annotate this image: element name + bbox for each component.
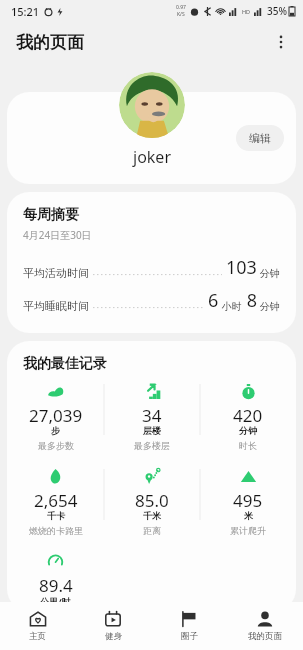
staticText: 米	[244, 510, 253, 521]
staticText: 千卡	[47, 510, 65, 521]
button[interactable]: Profile photo	[119, 72, 185, 138]
button[interactable]: 主页	[0, 602, 75, 650]
staticText: 4月24日至30日	[23, 228, 92, 242]
staticText: 燃烧的卡路里	[29, 525, 83, 536]
staticText: HD	[242, 8, 251, 15]
button[interactable]: 34	[104, 379, 200, 464]
staticText: 平均活动时间	[23, 266, 89, 280]
staticText: 35%	[267, 4, 287, 18]
staticText: 编辑	[249, 131, 271, 145]
staticText: 我的最佳记录	[23, 355, 107, 373]
staticText: 2,654	[34, 489, 78, 512]
button[interactable]: 2,654	[7, 464, 104, 549]
staticText: 27,039	[29, 404, 83, 427]
button[interactable]: 495	[200, 464, 296, 549]
staticText: 层楼	[143, 425, 161, 436]
staticText: 每周摘要	[23, 206, 79, 224]
staticText: 0.97	[176, 4, 186, 11]
button[interactable]: 27,039	[7, 379, 104, 464]
button[interactable]: 420	[200, 379, 296, 464]
staticText: 89.4	[39, 574, 73, 597]
staticText: 分钟	[257, 299, 280, 313]
button[interactable]: 89.4	[7, 549, 104, 611]
staticText: 小时	[219, 299, 242, 313]
staticText: 85.0	[135, 489, 169, 512]
staticText: 103	[226, 255, 257, 280]
button[interactable]: 编辑	[236, 125, 284, 151]
staticText: 圈子	[181, 631, 198, 642]
staticText: 千米	[143, 510, 161, 521]
staticText: 8	[242, 288, 257, 313]
staticText: 步	[51, 425, 60, 436]
staticText: 距离	[143, 525, 161, 536]
staticText: 495	[233, 489, 263, 512]
staticText: 最多楼层	[134, 440, 170, 451]
staticText: 我的页面	[248, 631, 282, 642]
staticText: 我的页面	[16, 32, 84, 53]
staticText: 累计爬升	[230, 525, 266, 536]
button[interactable]: 85.0	[104, 464, 200, 549]
staticText: 420	[233, 404, 263, 427]
staticText: 主页	[29, 631, 46, 642]
staticText: 时长	[239, 440, 257, 451]
button[interactable]: 圈子	[151, 602, 227, 650]
staticText: joker	[133, 146, 171, 168]
staticText: 34	[142, 404, 162, 427]
button[interactable]: 健身	[75, 602, 151, 650]
staticText: 健身	[105, 631, 122, 642]
staticText: 最多步数	[38, 440, 74, 451]
button[interactable]: 我的页面	[227, 602, 303, 650]
button[interactable]: 每周摘要	[7, 192, 296, 333]
staticText: 公里/时	[40, 595, 71, 607]
staticText: 6	[208, 288, 219, 313]
button[interactable]: More options	[265, 26, 297, 58]
staticText: 分钟	[257, 266, 280, 280]
staticText: K/S	[177, 11, 185, 18]
button[interactable]: joker	[7, 92, 296, 184]
staticText: 分钟	[239, 425, 257, 436]
staticText: 15:21	[11, 4, 40, 19]
staticText: 平均睡眠时间	[23, 299, 89, 313]
